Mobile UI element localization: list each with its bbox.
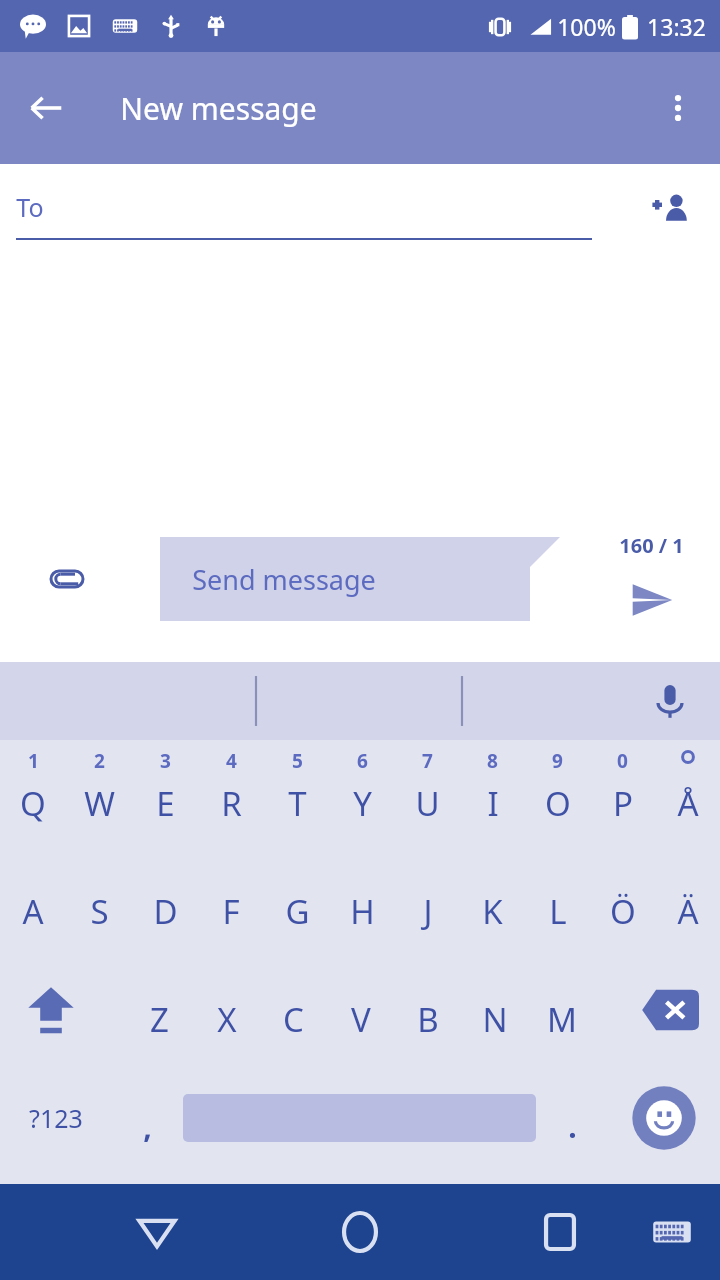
button[interactable]: L [525,848,590,956]
staticText: . [568,1106,577,1147]
staticText: J [423,889,433,934]
staticText: 100% [557,11,616,42]
staticText: 7 [422,748,433,774]
button[interactable]: B [394,956,461,1064]
staticText: N [482,997,508,1042]
staticText: P [613,781,633,826]
staticText: ?123 [29,1101,83,1135]
button[interactable]: ?123 [0,1064,111,1172]
staticText: H [350,889,375,934]
button[interactable]: 4 [198,740,264,848]
button[interactable]: Send [625,573,679,627]
staticText: 13:32 [647,11,706,42]
button[interactable]: D [132,848,198,956]
button[interactable]: 1 [0,740,66,848]
staticText: , [143,1106,152,1147]
staticText: W [84,781,115,826]
button[interactable]: S [66,848,132,956]
button[interactable]: Back [125,1200,189,1264]
staticText: B [417,997,439,1042]
staticText: 9 [552,748,563,774]
button[interactable]: Attach [38,550,96,608]
button[interactable]: A [0,848,66,956]
button[interactable]: 5 [264,740,330,848]
staticText: 3 [160,748,171,774]
button[interactable]: Å [655,740,720,848]
button[interactable]: Switch keyboard [642,1202,702,1262]
staticText: X [217,997,237,1042]
button[interactable]: 3 [132,740,198,848]
staticText: 4 [226,748,237,774]
staticText: R [221,781,242,826]
button[interactable]: 6 [330,740,395,848]
staticText: Å [677,781,699,826]
staticText: 5 [292,748,303,774]
staticText: T [288,781,307,826]
staticText: Y [353,781,372,826]
button[interactable]: Ö [590,848,655,956]
button[interactable]: Voice input [642,673,698,729]
button[interactable]: F [198,848,264,956]
staticText: Send message [192,561,376,598]
button[interactable]: V [327,956,394,1064]
button[interactable]: Z [126,956,193,1064]
button[interactable]: G [264,848,330,956]
button[interactable]: . [536,1064,608,1172]
staticText: Ä [677,889,699,934]
staticText: 2 [94,748,105,774]
button[interactable]: N [461,956,528,1064]
button[interactable]: 7 [395,740,460,848]
staticText: E [156,781,175,826]
staticText: O [545,781,571,826]
staticText: New message [120,88,317,129]
staticText: G [285,889,310,934]
staticText: 0 [617,748,628,774]
staticText: 160 / 1 [619,532,684,559]
staticText: D [153,889,178,934]
button[interactable]: H [330,848,395,956]
button[interactable]: K [460,848,525,956]
staticText: C [283,997,304,1042]
button[interactable]: Emoji [608,1064,720,1172]
staticText: L [549,889,567,934]
staticText: 6 [357,748,368,774]
button[interactable]: Ä [655,848,720,956]
staticText: U [415,781,440,826]
button[interactable]: To [16,190,592,240]
staticText: 1 [28,748,39,774]
button[interactable]: Add contact [640,178,700,238]
staticText: I [487,781,499,826]
staticText: S [90,889,109,934]
staticText: V [351,997,371,1042]
button[interactable]: 2 [66,740,132,848]
button[interactable]: , [111,1064,183,1172]
button[interactable]: M [528,956,595,1064]
button[interactable]: 9 [525,740,590,848]
staticText: M [547,997,577,1042]
button[interactable]: More options [650,80,706,136]
button[interactable]: J [395,848,460,956]
button[interactable]: 8 [460,740,525,848]
button[interactable]: Space [183,1064,536,1172]
button[interactable]: Shift [0,956,102,1064]
staticText: Z [150,997,169,1042]
button[interactable]: C [260,956,327,1064]
button[interactable]: Backspace [619,956,720,1064]
staticText: F [222,889,240,934]
button[interactable]: 0 [590,740,655,848]
button[interactable]: Recent apps [528,1200,592,1264]
button[interactable]: Send message [160,537,560,621]
button[interactable]: Back [18,80,74,136]
staticText: K [482,889,503,934]
staticText: Ö [610,889,636,934]
button[interactable]: Home [328,1200,392,1264]
staticText: 8 [487,748,498,774]
staticText: A [22,889,44,934]
staticText: Q [20,781,46,826]
button[interactable]: X [193,956,260,1064]
staticText: To [16,190,44,224]
